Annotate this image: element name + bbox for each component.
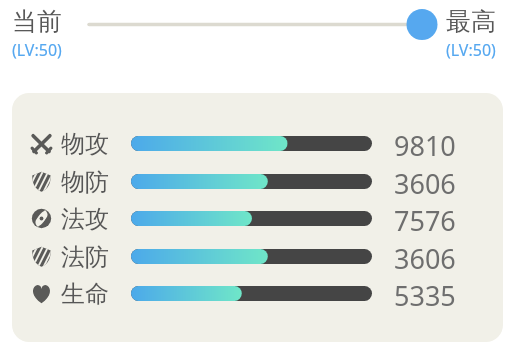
staticText: 5335 [394,277,456,313]
staticText: 9810 [394,127,456,163]
staticText: 法攻 [61,204,109,234]
staticText: 3606 [394,240,456,276]
button[interactable]: 法防 [12,238,503,274]
staticText: 物防 [61,167,109,197]
staticText: (LV:50) [12,39,62,61]
button[interactable]: 法攻 [12,200,503,236]
button[interactable]: 物攻 [12,125,503,161]
staticText: (LV:50) [446,39,496,61]
button[interactable]: 最高 [446,6,510,61]
staticText: 当前 [12,6,62,37]
button[interactable]: 当前 [12,6,74,61]
button[interactable]: Level slider [80,8,445,42]
button[interactable]: 物防 [12,163,503,199]
button[interactable]: 生命 [12,275,503,311]
staticText: 法防 [61,242,109,272]
staticText: 7576 [394,202,456,238]
staticText: 生命 [61,279,109,309]
staticText: 物攻 [61,129,109,159]
staticText: 3606 [394,165,456,201]
staticText: 最高 [446,6,496,37]
